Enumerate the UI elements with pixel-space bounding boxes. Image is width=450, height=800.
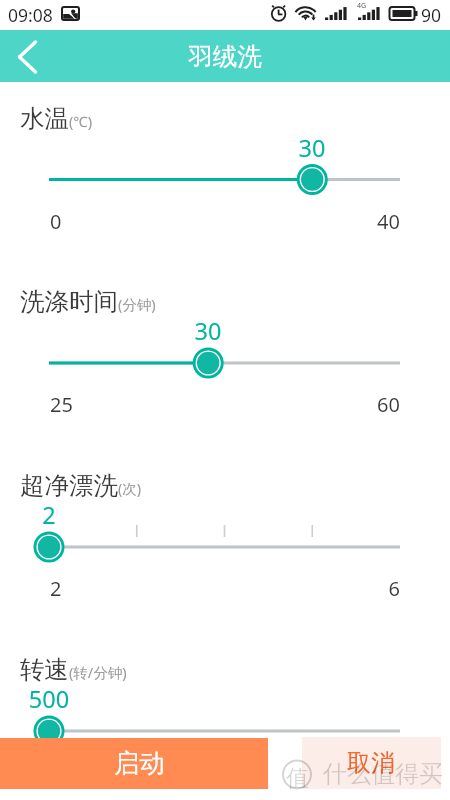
staticText: (分钟) xyxy=(118,294,156,314)
staticText: 启动 xyxy=(114,747,165,779)
staticText: 2 xyxy=(19,499,79,531)
staticText: 40 xyxy=(340,208,400,235)
button[interactable]: 启动 xyxy=(0,738,268,789)
staticText: 90 xyxy=(421,3,442,27)
staticText: 60 xyxy=(340,391,400,418)
staticText: 30 xyxy=(282,132,342,164)
staticText: (℃) xyxy=(69,111,93,131)
staticText: 30 xyxy=(178,315,238,347)
button[interactable]: 超净漂洗 slider, value 2 xyxy=(33,529,416,565)
staticText: 2 xyxy=(50,575,62,602)
staticText: 4G xyxy=(357,1,367,11)
staticText: (转/分钟) xyxy=(69,662,127,682)
staticText: 什么值得买 xyxy=(323,759,443,789)
staticText: 6 xyxy=(340,575,400,602)
staticText: 水温 xyxy=(20,103,69,134)
button[interactable]: 水温 slider, value 30 xyxy=(33,162,416,198)
staticText: 转速 xyxy=(20,654,69,685)
button[interactable]: 洗涤时间 slider, value 30 xyxy=(33,345,416,381)
staticText: (次) xyxy=(118,478,142,498)
staticText: 取消 xyxy=(347,748,395,778)
staticText: 09:08 xyxy=(8,3,53,27)
staticText: 值 xyxy=(286,764,309,793)
button[interactable]: 转速 slider, value 500 xyxy=(33,713,416,749)
staticText: 25 xyxy=(50,391,73,418)
staticText: 洗涤时间 xyxy=(20,286,118,317)
staticText: 0 xyxy=(50,208,62,235)
staticText: 超净漂洗 xyxy=(20,470,118,501)
button[interactable]: 取消 xyxy=(302,737,441,789)
staticText: 500 xyxy=(19,683,79,715)
button[interactable]: Back xyxy=(2,30,54,82)
staticText: 羽绒洗 xyxy=(0,41,450,72)
